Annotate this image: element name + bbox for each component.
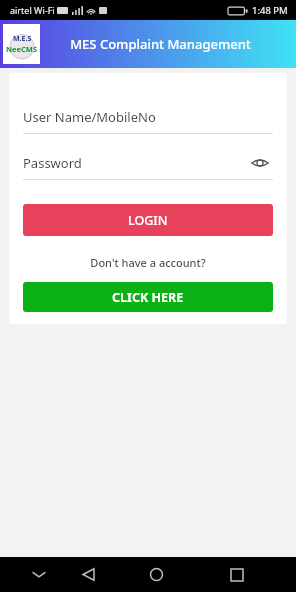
button[interactable]: Back: [60, 557, 117, 592]
button[interactable]: Hide keyboard: [18, 557, 60, 592]
button[interactable]: User Name/MobileNo: [23, 101, 273, 133]
staticText: Password: [23, 154, 82, 172]
button[interactable]: Home: [117, 557, 195, 592]
staticText: airtel Wi-Fi: [10, 4, 55, 16]
staticText: NeeCMS: [6, 44, 38, 54]
button[interactable]: CLICK HERE: [23, 282, 273, 312]
staticText: MES Complaint Management: [70, 35, 251, 53]
staticText: M.E.S: [13, 34, 32, 44]
staticText: CLICK HERE: [112, 289, 184, 306]
staticText: LOGIN: [128, 212, 168, 229]
staticText: User Name/MobileNo: [23, 108, 156, 126]
staticText: 1:48 PM: [252, 4, 288, 17]
button[interactable]: MES NeeCMS logo: [3, 24, 40, 64]
button[interactable]: LOGIN: [23, 204, 273, 236]
button[interactable]: Password: [23, 147, 273, 179]
staticText: Don't have a account?: [9, 255, 287, 270]
button[interactable]: Show password: [247, 150, 273, 176]
button[interactable]: Recent apps: [195, 557, 278, 592]
